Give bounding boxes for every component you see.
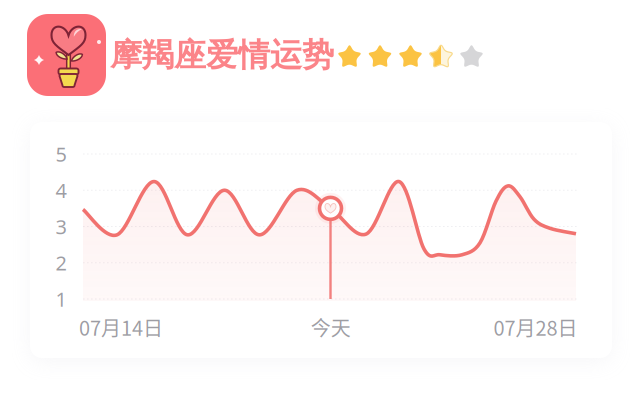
- staticText: 5: [55, 141, 66, 167]
- staticText: 2: [55, 249, 66, 276]
- staticText: 4: [55, 177, 66, 204]
- staticText: 07月14日: [79, 312, 163, 341]
- staticText: 1: [55, 286, 66, 312]
- button[interactable]: 摩羯座爱情运势: [27, 14, 106, 96]
- staticText: 07月28日: [494, 312, 578, 341]
- staticText: 摩羯座爱情运势: [110, 35, 334, 75]
- staticText: 3: [55, 213, 66, 240]
- staticText: 今天: [311, 312, 351, 341]
